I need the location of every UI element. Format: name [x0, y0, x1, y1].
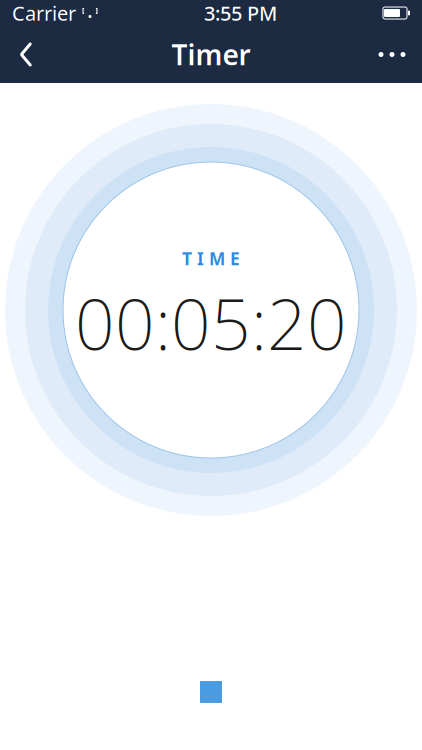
button[interactable]: Back [0, 26, 52, 83]
staticText: 00:05:20 [75, 277, 347, 369]
button[interactable]: Stop timer [186, 667, 236, 717]
staticText: T I M E [182, 247, 240, 270]
staticText: Timer [171, 36, 250, 73]
staticText: Carrier [12, 0, 76, 26]
staticText: 3:55 PM [204, 0, 277, 26]
button[interactable]: More options [362, 26, 422, 83]
